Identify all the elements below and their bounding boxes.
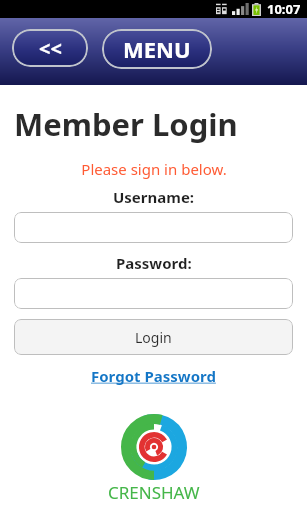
staticText: << [39,35,62,62]
button[interactable]: Forgot Password [91,366,216,386]
staticText: Member Login [14,103,238,145]
button[interactable] [14,278,293,309]
button[interactable]: MENU [102,29,212,69]
staticText: Forgot Password [91,366,216,386]
staticText: CRENSHAW [108,481,200,504]
button[interactable] [14,212,293,243]
staticText: Password: [116,253,192,273]
staticText: Login [135,328,172,347]
staticText: MENU [123,34,191,64]
staticText: Please sign in below. [81,159,227,179]
staticText: 10:07 [267,0,301,18]
staticText: Username: [113,187,195,207]
button[interactable]: Back [12,29,88,67]
button[interactable]: Login [14,319,293,355]
